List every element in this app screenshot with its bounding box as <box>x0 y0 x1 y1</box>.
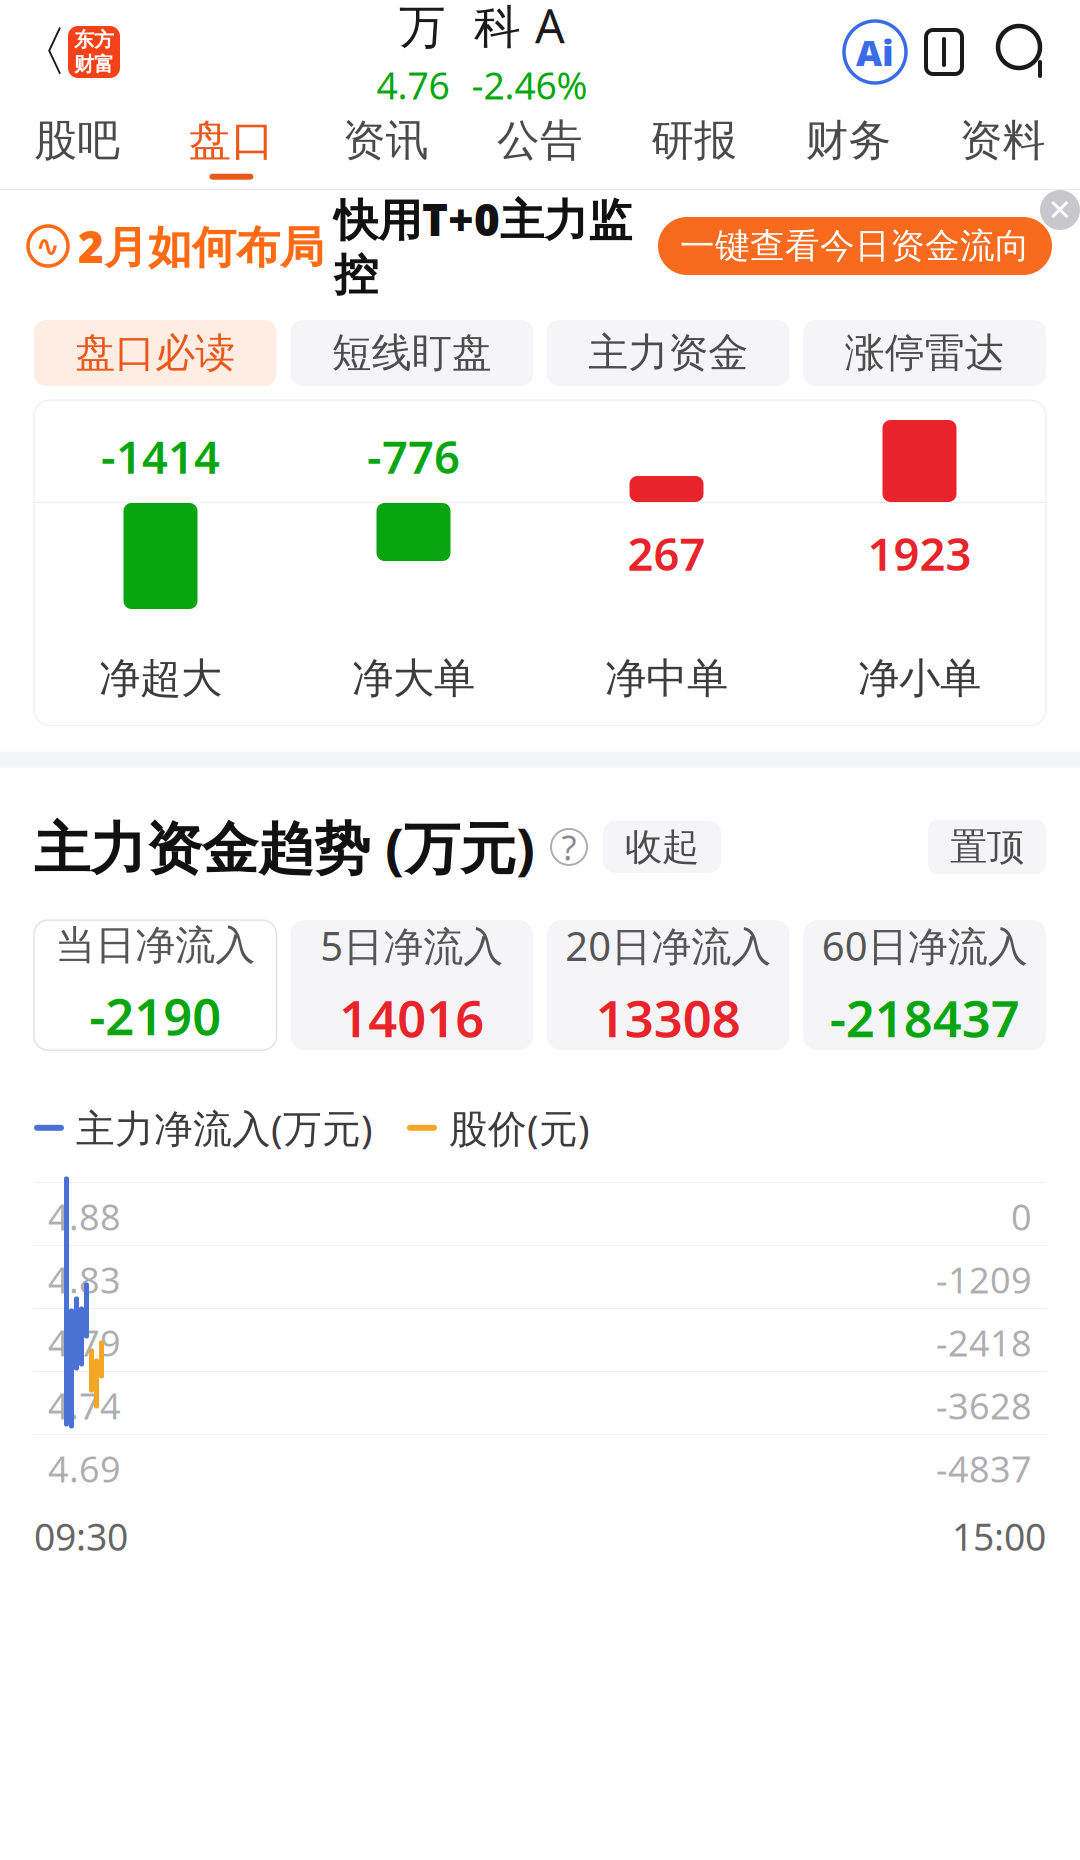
button[interactable]: 财务 <box>771 104 926 190</box>
button[interactable]: 资料 <box>926 104 1080 190</box>
staticText: -2418 <box>936 1319 1032 1366</box>
staticText: -2.46% <box>471 60 587 110</box>
staticText: 置顶 <box>950 824 1024 870</box>
staticText: Ai <box>856 28 894 76</box>
staticText: 4.88 <box>48 1193 121 1240</box>
staticText: 快用T+0主力监控 <box>334 190 632 302</box>
staticText: 资讯 <box>343 114 429 167</box>
staticText: 短线盯盘 <box>332 328 492 377</box>
staticText: 公告 <box>497 114 583 167</box>
staticText: 净中单 <box>605 653 728 704</box>
staticText: 20日净流入 <box>565 919 771 972</box>
staticText: 股吧 <box>34 114 120 167</box>
button[interactable]: Back <box>14 20 68 84</box>
staticText: 一键查看今日资金流向 <box>680 225 1030 267</box>
staticText: 5日净流入 <box>320 919 503 972</box>
button[interactable]: Help <box>551 829 587 865</box>
button[interactable]: 5日净流入 <box>290 920 533 1050</box>
staticText: 主力资金趋势 (万元) <box>34 810 535 884</box>
staticText: 东方 <box>74 27 114 52</box>
staticText: -776 <box>367 426 460 486</box>
staticText: 财务 <box>806 114 892 167</box>
staticText: 267 <box>627 523 705 583</box>
button[interactable]: 一键查看今日资金流向 <box>658 217 1052 275</box>
staticText: 4.79 <box>48 1319 121 1366</box>
staticText: 资料 <box>960 114 1046 167</box>
staticText: ∿ <box>35 229 60 263</box>
staticText: 研报 <box>651 114 737 167</box>
staticText: 主力净流入(万元) <box>76 1102 373 1153</box>
staticText: 净小单 <box>858 653 981 704</box>
button[interactable]: 主力资金 <box>547 320 789 386</box>
staticText: -1209 <box>936 1256 1032 1303</box>
staticText: 净超大 <box>99 653 222 704</box>
staticText: -1414 <box>101 426 220 486</box>
staticText: 4.76 <box>376 60 449 110</box>
button[interactable]: 收起 <box>603 821 721 873</box>
button[interactable]: ∿ <box>28 190 632 302</box>
staticText: 万 科 A <box>399 0 565 56</box>
staticText: 股价(元) <box>449 1102 590 1153</box>
button[interactable]: Share <box>906 20 982 84</box>
button[interactable]: 涨停雷达 <box>803 320 1046 386</box>
staticText: 15:00 <box>952 1511 1046 1561</box>
staticText: 14016 <box>339 984 484 1051</box>
button[interactable]: 公告 <box>463 104 617 190</box>
staticText: 60日净流入 <box>822 919 1028 972</box>
button[interactable]: Search <box>982 20 1066 84</box>
staticText: 〈 <box>14 19 67 85</box>
button[interactable]: 60日净流入 <box>803 920 1046 1050</box>
staticText: 涨停雷达 <box>845 328 1005 377</box>
staticText: -218437 <box>830 984 1020 1051</box>
staticText: 收起 <box>625 824 699 870</box>
staticText: 盘口 <box>188 114 274 167</box>
staticText: -2190 <box>89 982 221 1049</box>
button[interactable]: 置顶 <box>928 820 1046 874</box>
staticText: 13308 <box>596 984 741 1051</box>
button[interactable]: 盘口必读 <box>34 320 276 386</box>
staticText: 1923 <box>867 523 971 583</box>
button[interactable]: AI assistant <box>844 21 906 83</box>
button[interactable]: 20日净流入 <box>547 920 789 1050</box>
staticText: 净大单 <box>352 653 475 704</box>
staticText: ✕ <box>1047 193 1072 227</box>
staticText: 主力资金 <box>588 328 748 377</box>
staticText: 财富 <box>74 52 114 77</box>
staticText: 4.69 <box>48 1445 121 1492</box>
staticText: 当日净流入 <box>55 921 255 970</box>
staticText: 09:30 <box>34 1511 128 1561</box>
staticText: 2月如何布局 <box>78 217 324 275</box>
staticText: 盘口必读 <box>75 328 235 377</box>
button[interactable]: 资讯 <box>309 104 463 190</box>
button[interactable]: 股吧 <box>0 104 154 190</box>
staticText: 0 <box>1011 1193 1032 1240</box>
button[interactable]: 当日净流入 <box>34 920 276 1050</box>
staticText: -4837 <box>936 1445 1032 1492</box>
staticText: ? <box>561 824 576 870</box>
button[interactable]: Close ad <box>1040 190 1080 230</box>
staticText: 4.83 <box>48 1256 121 1303</box>
staticText: -3628 <box>936 1382 1032 1429</box>
button[interactable]: 研报 <box>617 104 771 190</box>
button[interactable]: 短线盯盘 <box>290 320 533 386</box>
staticText: 4.74 <box>48 1382 121 1429</box>
button[interactable]: 盘口 <box>154 104 309 190</box>
button[interactable]: East Money home <box>68 26 120 78</box>
